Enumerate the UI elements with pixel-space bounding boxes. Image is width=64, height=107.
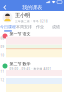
staticText: 王小明 — [15, 12, 30, 18]
staticText: 本周安排 — [16, 24, 32, 29]
button[interactable]: 成绩 — [48, 24, 64, 32]
staticText: 09 — [0, 45, 4, 49]
staticText: 12 — [0, 78, 4, 82]
button[interactable]: 第一节 语文 — [0, 32, 64, 40]
staticText: 成绩 — [52, 24, 60, 29]
staticText: 今日课程 — [0, 24, 16, 29]
button[interactable]: 第二节 数学 — [0, 62, 64, 70]
button[interactable]: 今日课程 — [0, 24, 16, 32]
staticText: 第一节 语文 — [9, 31, 30, 36]
staticText: 第二节 数学 — [9, 61, 30, 66]
staticText: 作业 — [36, 24, 44, 29]
staticText: 10 — [0, 54, 4, 57]
button[interactable]: 王小明 — [0, 11, 64, 24]
button[interactable]: 作业 — [32, 24, 48, 32]
button[interactable]: Back — [0, 4, 10, 11]
staticText: 08 — [0, 37, 4, 40]
button[interactable]: 本周安排 — [16, 24, 32, 32]
staticText: 09:00 - 09:45 · 教学楼 A301 — [9, 67, 51, 71]
staticText: 我的课表 — [22, 4, 42, 11]
staticText: 三年级二班 · 学号 0218 — [15, 20, 48, 23]
staticText: 11 — [0, 70, 4, 73]
